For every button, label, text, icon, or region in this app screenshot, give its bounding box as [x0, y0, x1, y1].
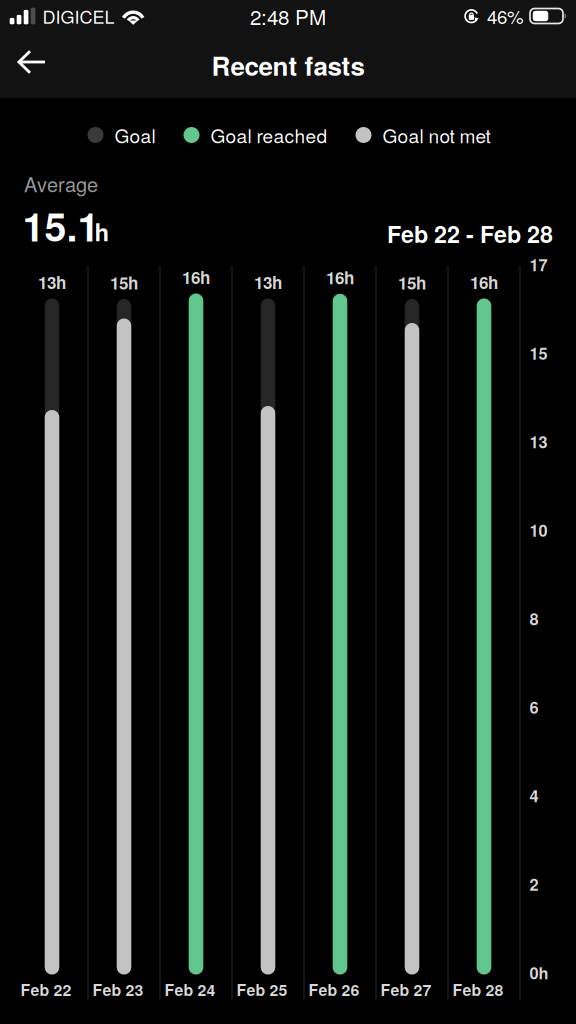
staticText: 16h — [326, 265, 354, 289]
staticText: 17 — [529, 253, 547, 276]
staticText: Goal not met — [382, 121, 490, 149]
staticText: Feb 24 — [164, 978, 215, 1001]
button[interactable]: Back — [3, 37, 61, 87]
staticText: h — [94, 214, 109, 249]
staticText: Feb 22 — [20, 978, 71, 1001]
staticText: 15 — [529, 341, 547, 365]
staticText: Feb 22 - Feb 28 — [387, 217, 553, 250]
staticText: Goal reached — [210, 121, 327, 149]
staticText: Feb 26 — [308, 978, 359, 1001]
staticText: Feb 27 — [380, 978, 431, 1001]
staticText: 13h — [254, 270, 282, 294]
staticText: 0h — [529, 961, 548, 984]
staticText: Feb 23 — [92, 978, 143, 1001]
button[interactable]: Goal not met — [355, 121, 490, 149]
staticText: 2:48 PM — [250, 1, 326, 31]
staticText: Feb 28 — [452, 978, 503, 1001]
staticText: 13 — [529, 430, 547, 453]
button[interactable]: Goal reached — [183, 121, 327, 149]
staticText: 15.1 — [22, 197, 99, 254]
staticText: 4 — [529, 784, 538, 807]
staticText: 10 — [529, 518, 547, 542]
button[interactable]: Goal — [87, 121, 155, 149]
staticText: 46% — [487, 3, 524, 29]
staticText: 2 — [529, 872, 538, 896]
staticText: Goal — [114, 121, 155, 149]
staticText: Feb 25 — [236, 978, 287, 1001]
staticText: 8 — [529, 607, 538, 630]
staticText: 6 — [529, 695, 538, 719]
staticText: DIGICEL — [42, 3, 114, 29]
staticText: 16h — [470, 270, 498, 294]
staticText: 15h — [110, 270, 138, 295]
staticText: 16h — [182, 265, 210, 289]
staticText: 15h — [398, 270, 426, 295]
staticText: Average — [24, 169, 98, 198]
staticText: Recent fasts — [211, 46, 364, 84]
staticText: 13h — [38, 270, 66, 294]
